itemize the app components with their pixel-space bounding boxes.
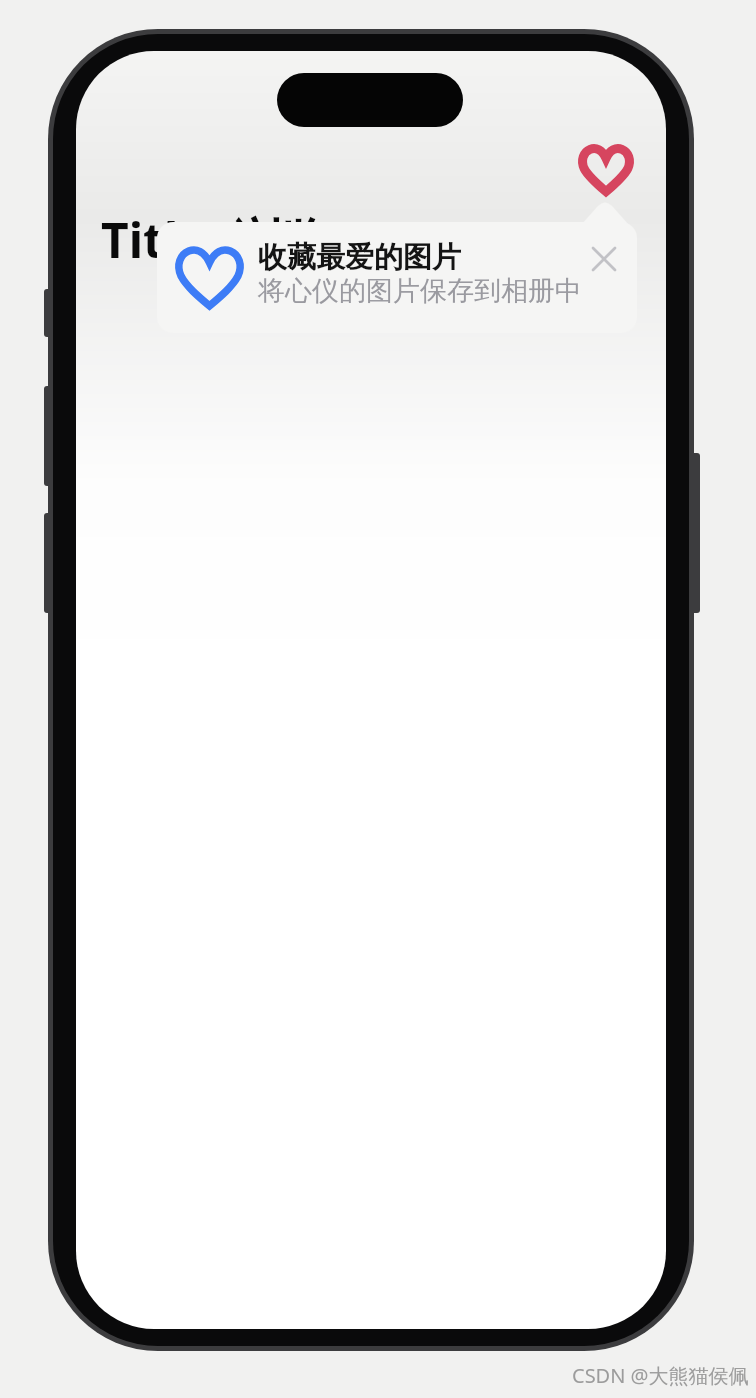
button[interactable]: [565, 130, 647, 212]
staticText: 收藏最爱的图片: [258, 239, 461, 276]
button[interactable]: [581, 236, 627, 282]
staticText: Title: 浏览: [101, 207, 329, 273]
staticText: 将心仪的图片保存到相册中: [258, 274, 582, 308]
staticText: CSDN @大熊猫侯佩: [572, 1362, 749, 1389]
